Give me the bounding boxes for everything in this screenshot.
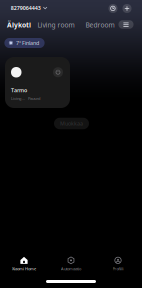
staticText: Älykoti [7, 21, 31, 29]
staticText: 8279064443 [11, 4, 41, 12]
button[interactable]: Manage rooms [118, 20, 133, 29]
staticText: Living ... Paused [11, 96, 40, 101]
button[interactable]: 7° Finland [4, 38, 45, 48]
button[interactable]: Automaatio [47, 254, 94, 274]
button[interactable]: Add device [122, 4, 131, 13]
button[interactable]: Älykoti [6, 19, 32, 31]
staticText: 7° Finland [16, 39, 39, 47]
staticText: Tarmo [11, 87, 27, 94]
button[interactable]: Profiili [94, 254, 141, 274]
staticText: Living room [37, 21, 74, 29]
staticText: Bedroom [85, 21, 114, 29]
button[interactable]: Tarmo [5, 57, 70, 108]
button[interactable]: Bedroom [84, 19, 115, 31]
button[interactable]: 8279064443 [9, 2, 49, 14]
button[interactable]: History [108, 4, 117, 13]
staticText: Muokkaa [60, 120, 83, 127]
staticText: Xiaomi Home [12, 266, 36, 271]
staticText: Profiili [112, 266, 123, 271]
staticText: Automaatio [61, 266, 81, 271]
button[interactable]: Muokkaa [54, 118, 89, 129]
button[interactable]: Living room [36, 19, 75, 31]
button[interactable]: Xiaomi Home [0, 254, 47, 274]
